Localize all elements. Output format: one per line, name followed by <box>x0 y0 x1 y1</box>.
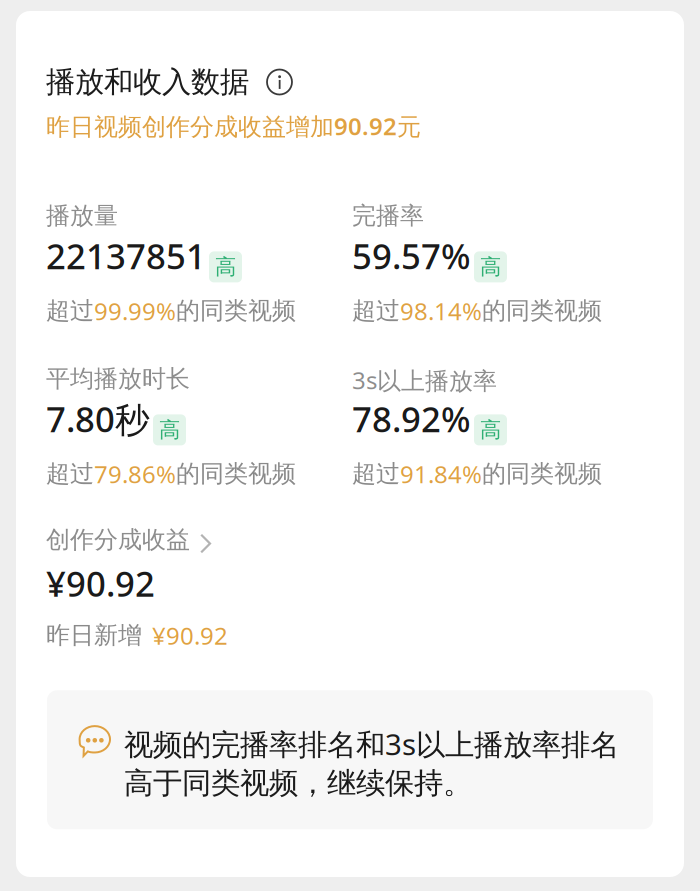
staticText: 22137851 <box>46 233 206 279</box>
staticText: 高于同类视频，继续保持。 <box>124 765 472 801</box>
staticText: 视频的完播率排名和3s以上播放率排名 <box>124 724 619 763</box>
staticText: 超过 <box>352 296 400 326</box>
staticText: 3s以上播放率 <box>352 364 497 396</box>
staticText: 超过 <box>352 459 400 489</box>
staticText: 98.14% <box>400 295 482 327</box>
staticText: 91.84% <box>400 458 482 490</box>
staticText: 59.57% <box>352 233 471 279</box>
staticText: 78.92% <box>352 396 471 442</box>
staticText: 79.86% <box>94 458 176 490</box>
staticText: 完播率 <box>352 201 424 230</box>
staticText: 的同类视频 <box>176 296 296 326</box>
staticText: 创作分成收益 <box>46 525 190 554</box>
staticText: 高 <box>215 254 236 280</box>
staticText: 昨日视频创作分成收益增加90.92元 <box>46 110 421 142</box>
staticText: 超过 <box>46 459 94 489</box>
staticText: 99.99% <box>94 295 176 327</box>
staticText: 播放量 <box>46 201 118 230</box>
staticText: ¥90.92 <box>152 619 228 651</box>
staticText: 平均播放时长 <box>46 364 190 393</box>
staticText: 高 <box>159 417 180 443</box>
staticText: 昨日新增 <box>46 621 142 650</box>
staticText: 的同类视频 <box>176 459 296 489</box>
staticText: ¥90.92 <box>46 560 155 606</box>
staticText: 的同类视频 <box>482 459 602 489</box>
button[interactable]: 创作分成收益 <box>16 525 684 554</box>
button[interactable]: 数据说明 <box>266 68 293 95</box>
staticText: 高 <box>480 417 501 443</box>
staticText: 高 <box>480 254 501 280</box>
staticText: 7.80秒 <box>46 396 150 442</box>
staticText: 超过 <box>46 296 94 326</box>
staticText: 的同类视频 <box>482 296 602 326</box>
staticText: 播放和收入数据 <box>46 64 249 100</box>
